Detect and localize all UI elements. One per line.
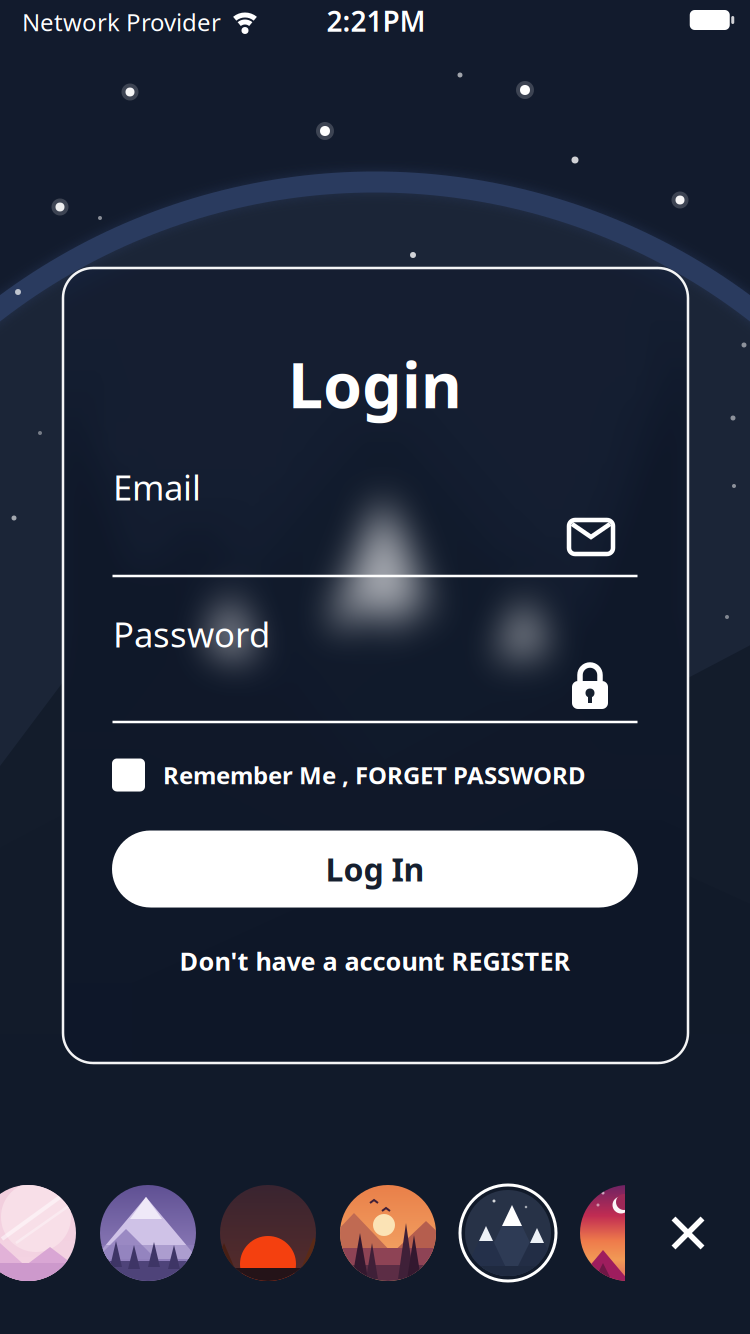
- button[interactable]: Email: [113, 463, 638, 581]
- staticText: Log In: [325, 848, 424, 890]
- staticText: 2:21PM: [326, 2, 425, 40]
- staticText: Remember Me , FORGET PASSWORD: [163, 759, 586, 791]
- button[interactable]: Don't have a account REGISTER: [179, 944, 570, 978]
- staticText: Login: [288, 342, 462, 426]
- button[interactable]: [220, 1185, 316, 1281]
- staticText: Don't have a account REGISTER: [179, 944, 570, 978]
- button[interactable]: [0, 1185, 76, 1281]
- button[interactable]: [340, 1185, 436, 1281]
- staticText: Email: [113, 464, 201, 510]
- staticText: Network Provider: [22, 6, 221, 38]
- button[interactable]: [580, 1185, 676, 1281]
- staticText: Password: [113, 611, 270, 657]
- button[interactable]: Password: [113, 610, 638, 728]
- button[interactable]: [112, 758, 145, 791]
- button[interactable]: [670, 1215, 705, 1250]
- button[interactable]: Log In: [112, 830, 638, 907]
- button[interactable]: [460, 1185, 556, 1281]
- button[interactable]: [100, 1185, 196, 1281]
- button[interactable]: Remember Me , FORGET PASSWORD: [163, 759, 586, 791]
